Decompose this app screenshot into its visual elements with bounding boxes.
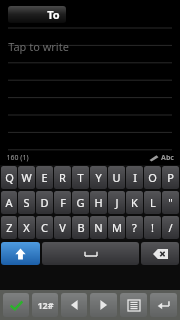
button[interactable]: E (36, 166, 53, 189)
button[interactable]: M (108, 216, 125, 239)
staticText: ? (132, 220, 137, 235)
button[interactable]: K (126, 191, 143, 214)
button[interactable]: N (90, 216, 107, 239)
staticText: Y (95, 170, 102, 185)
button[interactable]: Tap to write (0, 36, 180, 56)
button[interactable]: Enter (150, 293, 177, 317)
button[interactable]: ? (126, 216, 143, 239)
button[interactable]: Backspace (141, 242, 179, 265)
staticText: T (77, 170, 84, 185)
button[interactable]: Numbers (32, 293, 58, 317)
button[interactable]: Q (1, 166, 17, 189)
staticText: E (41, 170, 48, 185)
staticText: V (59, 220, 66, 235)
staticText: H (94, 195, 103, 210)
staticText: F (60, 195, 66, 210)
staticText: Q (5, 170, 14, 185)
button[interactable]: ! (144, 216, 161, 239)
button[interactable]: Z (1, 216, 17, 239)
button[interactable]: Accept (3, 293, 29, 317)
button[interactable]: J (108, 191, 125, 214)
button[interactable]: G (72, 191, 89, 214)
staticText: R (59, 170, 66, 185)
staticText: Tap to write (8, 39, 69, 54)
button[interactable]: F (54, 191, 71, 214)
staticText: S (23, 195, 30, 210)
button[interactable]: X (18, 216, 35, 239)
staticText: P (167, 170, 174, 185)
button[interactable]: U (108, 166, 125, 189)
staticText: ! (151, 220, 154, 235)
button[interactable]: T (72, 166, 89, 189)
staticText: N (94, 220, 103, 235)
button[interactable]: P (162, 166, 179, 189)
button[interactable]: C (36, 216, 53, 239)
button[interactable]: Left (61, 293, 87, 317)
button[interactable]: " (162, 191, 179, 214)
button[interactable]: R (54, 166, 71, 189)
staticText: L (150, 195, 156, 210)
button[interactable]: V (54, 216, 71, 239)
staticText: 12# (37, 299, 54, 311)
button[interactable]: W (18, 166, 35, 189)
button[interactable]: A (1, 191, 17, 214)
staticText: D (40, 195, 49, 210)
button[interactable]: Space (42, 242, 139, 265)
button[interactable]: Y (90, 166, 107, 189)
button[interactable]: B (72, 216, 89, 239)
button[interactable]: D (36, 191, 53, 214)
button[interactable]: I (126, 166, 143, 189)
staticText: A (5, 195, 13, 210)
staticText: M (112, 220, 122, 235)
staticText: O (148, 170, 157, 185)
staticText: 160 (1) (6, 153, 29, 163)
staticText: W (21, 170, 32, 185)
button[interactable]: Menu (120, 293, 147, 317)
button[interactable]: Right (90, 293, 117, 317)
staticText: B (77, 220, 85, 235)
staticText: To (47, 7, 60, 22)
button[interactable]: H (90, 191, 107, 214)
button[interactable]: S (18, 191, 35, 214)
button[interactable]: O (144, 166, 161, 189)
staticText: / (168, 220, 173, 235)
staticText: " (168, 195, 173, 210)
staticText: C (41, 220, 48, 235)
staticText: Abc (161, 153, 174, 163)
staticText: Z (6, 220, 13, 235)
button[interactable]: / (162, 216, 179, 239)
button[interactable]: Shift (1, 242, 40, 265)
staticText: K (131, 195, 138, 210)
staticText: J (115, 195, 119, 210)
staticText: X (23, 220, 30, 235)
staticText: G (76, 195, 85, 210)
button[interactable]: To (8, 6, 66, 23)
button[interactable]: L (144, 191, 161, 214)
staticText: I (133, 170, 137, 185)
staticText: U (112, 170, 121, 185)
